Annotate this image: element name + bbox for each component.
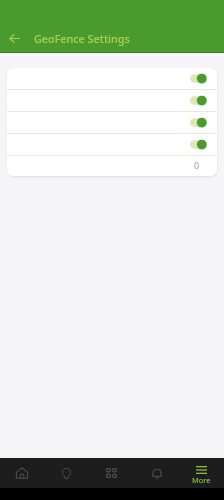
button[interactable] [7, 112, 217, 133]
button[interactable]: Home [0, 458, 44, 488]
button[interactable] [7, 68, 217, 89]
button[interactable]: Alerts [134, 458, 179, 488]
button[interactable] [7, 90, 217, 111]
button[interactable]: More [179, 458, 224, 488]
button[interactable]: 0 [7, 156, 217, 176]
button[interactable]: Back [4, 28, 24, 48]
button[interactable] [7, 134, 217, 155]
staticText: More [192, 475, 211, 485]
staticText: 0 [194, 159, 200, 171]
button[interactable]: Places [44, 458, 89, 488]
button[interactable]: Apps [89, 458, 134, 488]
staticText: GeoFence Settings [34, 31, 130, 46]
